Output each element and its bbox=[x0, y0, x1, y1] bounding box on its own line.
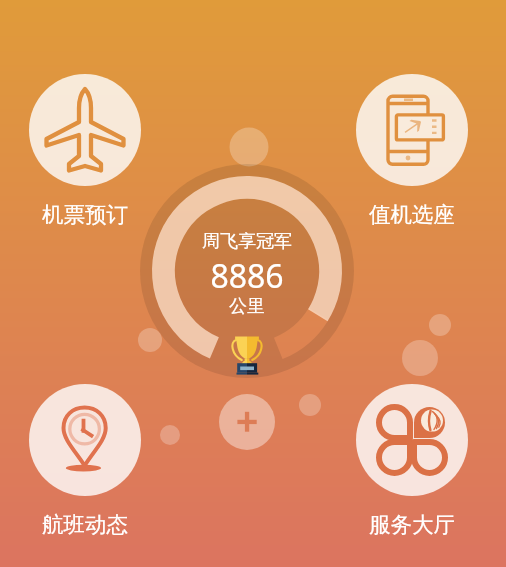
staticText: 公里 bbox=[229, 295, 265, 318]
staticText: 服务大厅 bbox=[337, 511, 487, 567]
staticText: 航班动态 bbox=[10, 511, 160, 567]
staticText: 值机选座 bbox=[337, 201, 487, 567]
button[interactable]: 服务大厅 bbox=[356, 384, 468, 496]
button[interactable]: 机票预订 bbox=[29, 74, 141, 186]
button[interactable]: 值机选座 bbox=[356, 74, 468, 186]
staticText: 机票预订 bbox=[10, 201, 160, 567]
button[interactable]: 航班动态 bbox=[29, 384, 141, 496]
staticText: 8886 bbox=[210, 254, 284, 298]
staticText: 周飞享冠军 bbox=[202, 230, 292, 253]
